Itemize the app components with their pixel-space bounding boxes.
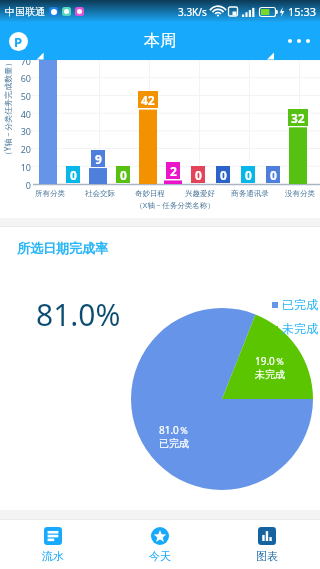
staticText: 0 (220, 167, 227, 183)
staticText: 10 (14, 161, 31, 173)
staticText: 商务通讯录 (220, 189, 280, 198)
staticText: 本周 (144, 31, 176, 51)
staticText: 未完成 (255, 368, 285, 381)
staticText: P (14, 33, 23, 51)
staticText: 已完成 (159, 437, 189, 450)
staticText: 0 (70, 167, 77, 183)
staticText: 0 (195, 167, 202, 183)
staticText: 42 (141, 92, 155, 108)
staticText: 所有分类 (20, 189, 80, 198)
staticText: 未完成 (282, 321, 318, 336)
staticText: 图表 (256, 549, 278, 563)
staticText: 0 (245, 167, 252, 183)
staticText: 兴趣爱好 (170, 189, 230, 198)
staticText: 中国联通 (5, 5, 45, 18)
staticText: 2 (170, 163, 177, 179)
staticText: 20 (14, 143, 31, 155)
staticText: 30 (14, 125, 31, 137)
staticText: 50 (14, 90, 31, 102)
staticText: 0 (270, 167, 277, 183)
staticText: 60 (14, 72, 31, 84)
staticText: 已完成 (282, 297, 318, 312)
staticText: 0 (120, 167, 127, 183)
button[interactable]: More options (278, 27, 320, 55)
staticText: 奇妙日程 (120, 189, 180, 198)
staticText: 32 (291, 110, 305, 126)
staticText: 19.0％ (255, 354, 285, 368)
staticText: 81.0% (36, 294, 121, 335)
staticText: 今天 (149, 549, 171, 563)
button[interactable]: 流水 (0, 520, 106, 569)
staticText: 9 (95, 151, 102, 167)
staticText: 流水 (42, 549, 64, 563)
staticText: 3.3K/s (178, 5, 207, 19)
staticText: 81.0％ (159, 423, 189, 437)
button[interactable]: 今天 (106, 520, 213, 569)
staticText: 社会交际 (70, 189, 130, 198)
staticText: （Y轴－分类任务完成数量） (2, 49, 13, 169)
button[interactable]: App logo (9, 32, 28, 51)
staticText: 没有分类 (270, 189, 320, 198)
staticText: 所选日期完成率 (17, 240, 108, 256)
staticText: 40 (14, 108, 31, 120)
staticText: 0 (14, 179, 31, 191)
button[interactable]: 图表 (213, 520, 320, 569)
staticText: （X轴－任务分类名称） (125, 200, 225, 210)
staticText: 15:33 (288, 4, 317, 19)
staticText: 70 (14, 55, 31, 67)
